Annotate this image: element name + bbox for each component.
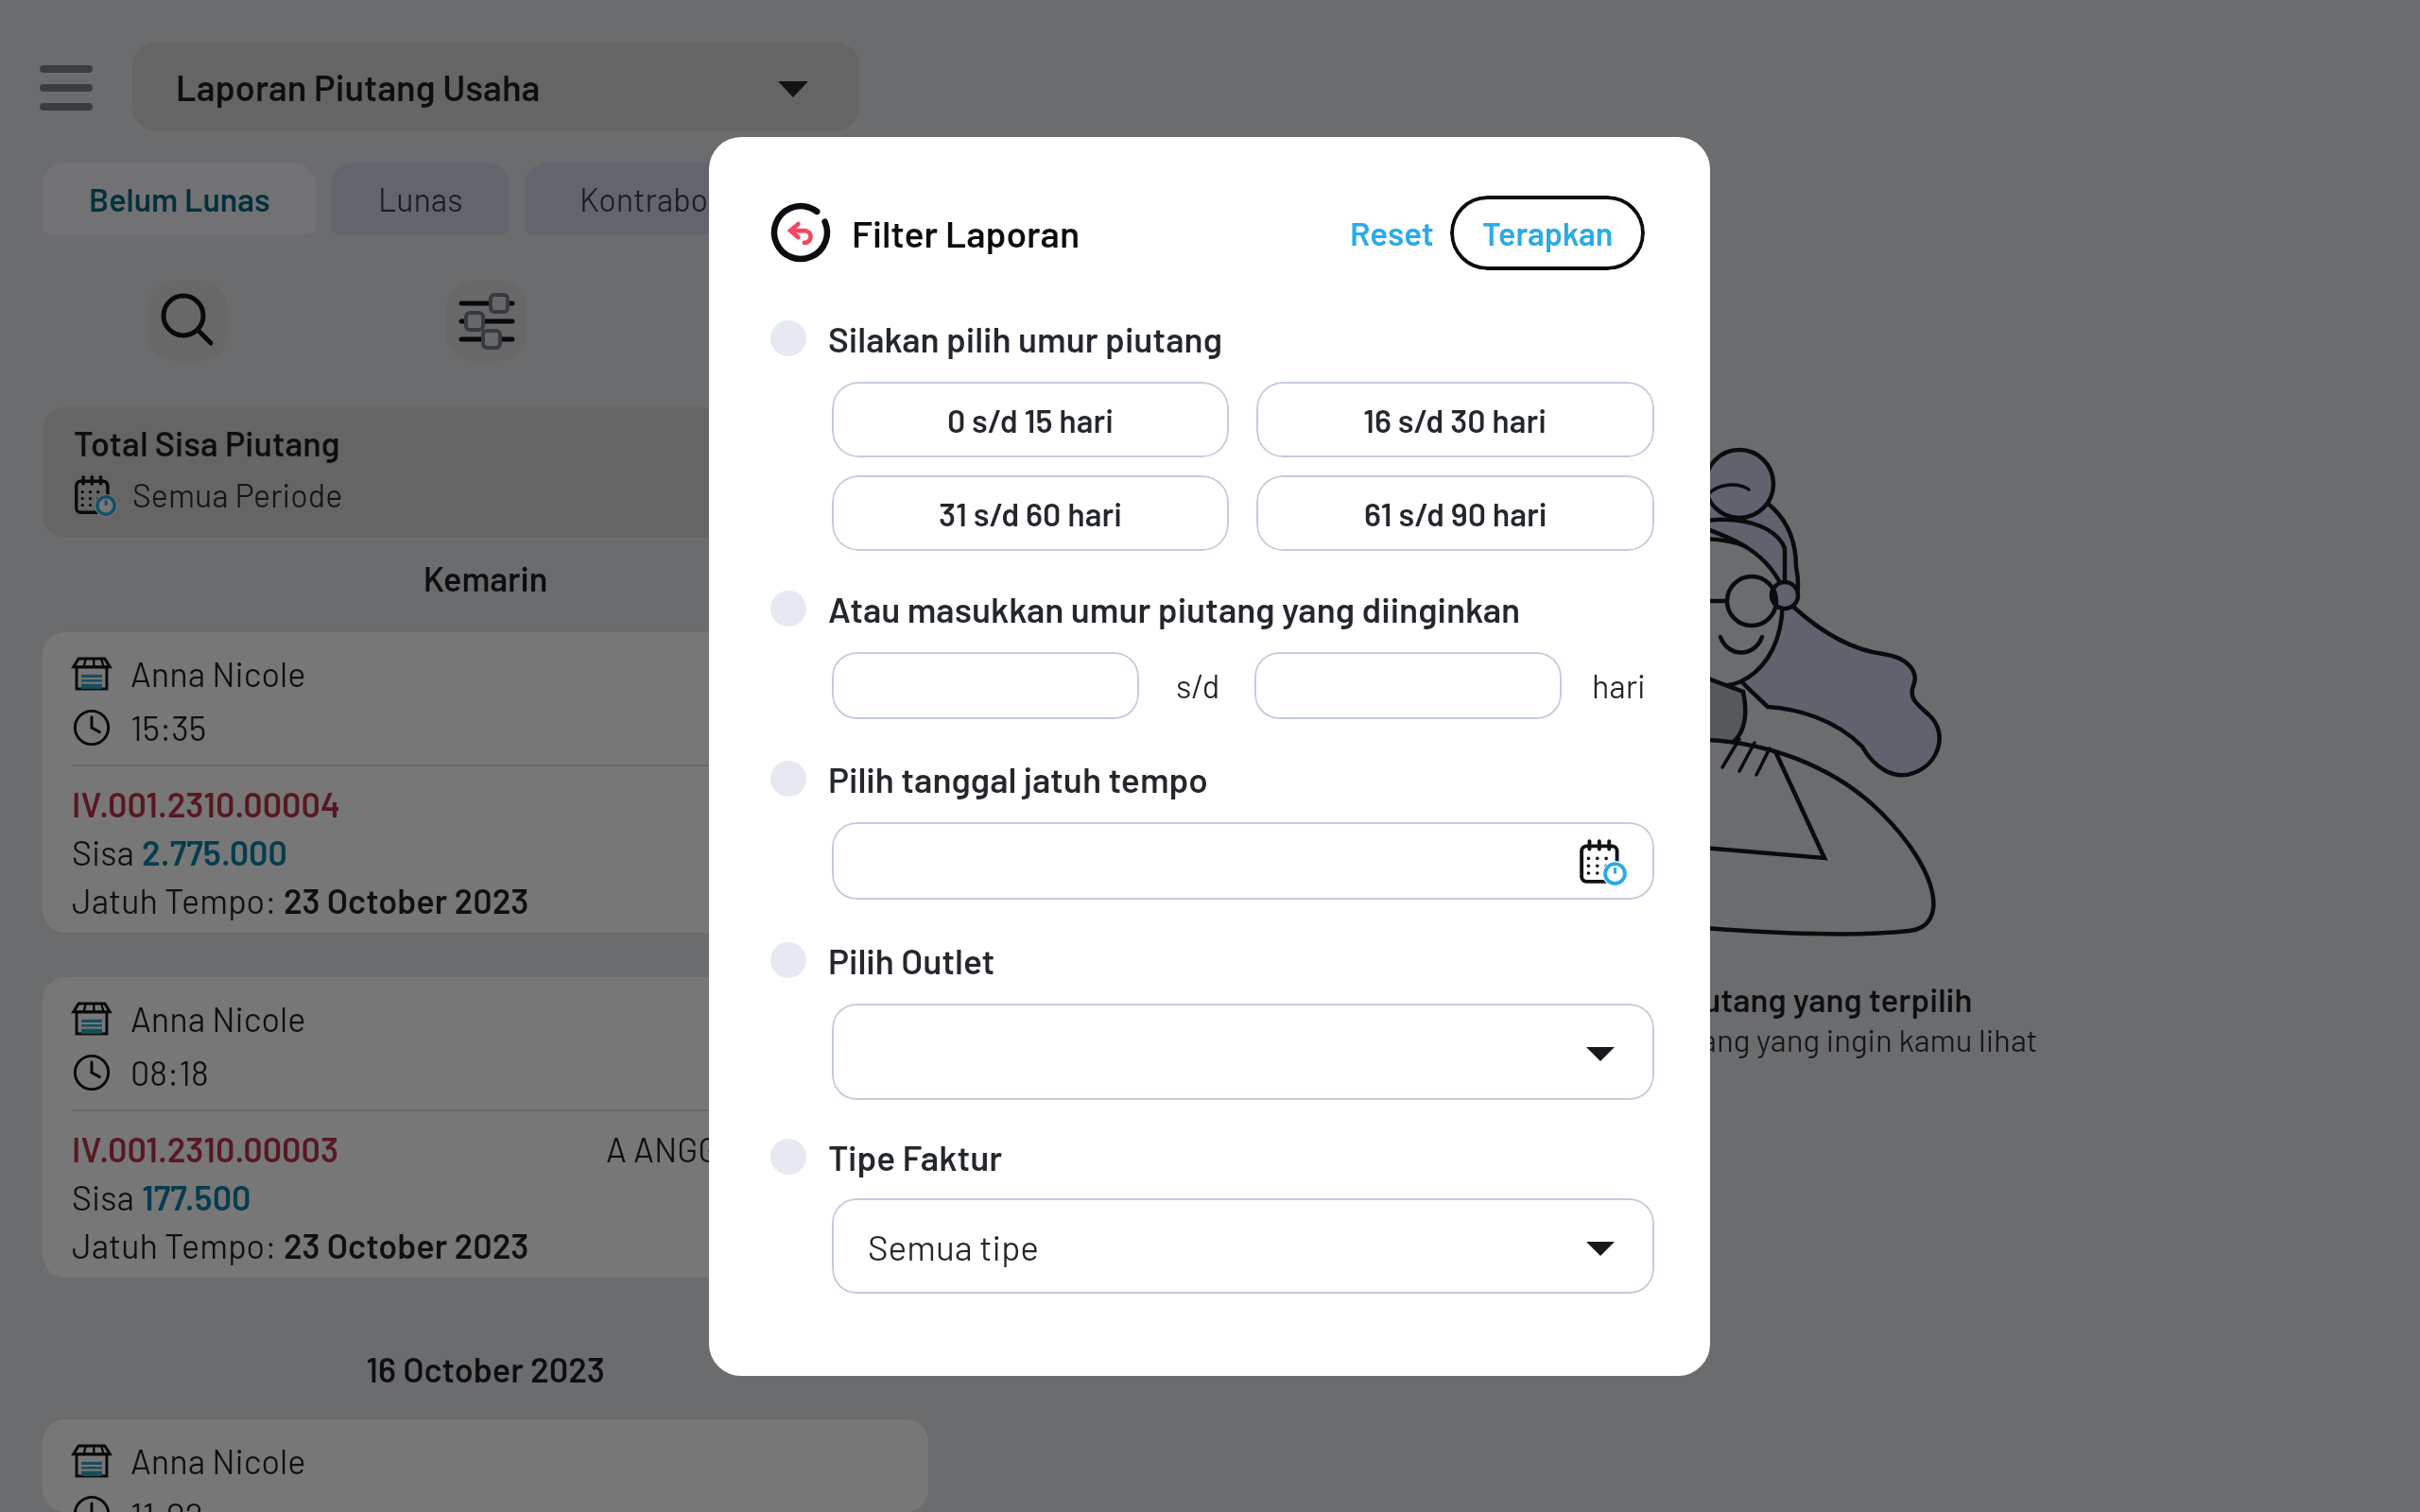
staticText: Sisa (72, 1177, 142, 1217)
staticText: Laporan Piutang Usaha (176, 65, 541, 109)
button[interactable]: Dropdown (832, 1004, 1654, 1100)
button[interactable]: 0 s/d 15 hari (832, 382, 1229, 457)
staticText: Filter Laporan (852, 211, 1080, 255)
button[interactable]: Reset (1339, 203, 1445, 262)
button[interactable]: Filter (446, 281, 527, 361)
button[interactable]: 16 s/d 30 hari (1256, 382, 1654, 457)
staticText: 23 October 2023 (284, 880, 529, 920)
staticText: Reset (1350, 213, 1434, 252)
staticText: Silakan pilih umur piutang (828, 318, 1222, 359)
button[interactable]: Terapkan (1450, 196, 1645, 270)
staticText: IV.001.2310.00004 (72, 783, 341, 824)
button[interactable]: Anna Nicole (43, 977, 928, 1278)
button[interactable]: Menu (39, 60, 92, 113)
staticText: Jatuh Tempo: (72, 880, 284, 920)
staticText: Semua tipe (868, 1226, 1039, 1267)
staticText: Anna Nicole (130, 1440, 306, 1481)
staticText: 177.500 (142, 1177, 251, 1217)
staticText: Anna Nicole (130, 653, 306, 694)
staticText: Atau masukkan umur piutang yang diingink… (828, 588, 1521, 629)
button[interactable]: Belum Lunas (43, 163, 316, 234)
button[interactable]: Input (1254, 652, 1562, 719)
button[interactable]: Input (832, 652, 1139, 719)
button[interactable]: Back (770, 202, 831, 263)
staticText: Belum Lunas (89, 180, 270, 218)
staticText: Total Sisa Piutang (74, 422, 340, 463)
staticText: 08:18 (130, 1052, 209, 1092)
staticText: Lunas (378, 180, 463, 218)
staticText: Anna Nicole (130, 998, 306, 1039)
button[interactable]: 61 s/d 90 hari (1256, 475, 1654, 551)
staticText: Pilih tanggal jatuh tempo (828, 758, 1208, 799)
button[interactable]: Anna Nicole (43, 632, 928, 933)
button[interactable]: Lunas (331, 163, 510, 234)
staticText: 16 October 2023 (43, 1349, 928, 1389)
staticText: s/d (1176, 666, 1220, 705)
staticText: Silahkan pilih piutang yang ingin kamu l… (1373, 1021, 2129, 1058)
staticText: Semua Periode (132, 475, 343, 514)
staticText: Sisa (72, 832, 142, 872)
staticText: 61 s/d 90 hari (1364, 494, 1547, 533)
button[interactable]: Anna Nicole (43, 1419, 928, 1512)
staticText: Kemarin (43, 558, 928, 598)
staticText: A ANGG (606, 1128, 719, 1169)
staticText: 0 s/d 15 hari (947, 401, 1114, 439)
button[interactable]: Dropdown (832, 1198, 1654, 1294)
button[interactable]: Kontrabon (525, 163, 780, 234)
staticText: 15:35 (130, 707, 207, 747)
staticText: Jatuh Tempo: (72, 1225, 284, 1265)
button[interactable]: Search (147, 281, 228, 361)
staticText: 23 October 2023 (284, 1225, 529, 1265)
staticText: hari (1592, 666, 1646, 705)
staticText: Terapkan (1482, 214, 1614, 252)
button[interactable]: Pick due date (832, 822, 1654, 900)
button[interactable]: Total Sisa Piutang (43, 407, 928, 538)
staticText: Pilih Outlet (828, 939, 995, 981)
staticText: IV.001.2310.00003 (72, 1128, 339, 1169)
staticText: 2.775.000 (142, 832, 288, 872)
staticText: Kontrabon (579, 180, 726, 218)
button[interactable]: Laporan Piutang Usaha (132, 43, 859, 130)
staticText: Tipe Faktur (828, 1136, 1003, 1177)
staticText: 16 s/d 30 hari (1363, 401, 1547, 439)
staticText: 31 s/d 60 hari (939, 494, 1122, 533)
staticText: Tidak ada piutang yang terpilih (1373, 979, 2129, 1019)
button[interactable]: 31 s/d 60 hari (832, 475, 1229, 551)
staticText: 11:02 (130, 1494, 204, 1512)
